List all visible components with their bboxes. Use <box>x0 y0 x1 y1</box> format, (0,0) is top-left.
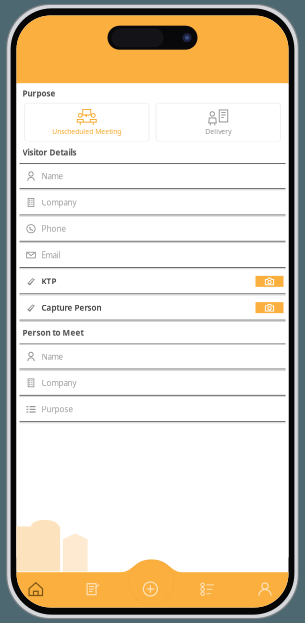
button[interactable]: Add <box>122 576 179 602</box>
staticText: Person to Meet <box>22 327 83 338</box>
button[interactable]: Phone <box>19 217 285 243</box>
staticText: Company <box>41 377 76 388</box>
button[interactable]: Purpose <box>19 397 285 423</box>
staticText: Name <box>41 171 63 181</box>
button[interactable]: List <box>179 576 236 602</box>
button[interactable]: Delivery <box>156 103 280 141</box>
button[interactable]: Profile <box>236 576 294 602</box>
staticText: Name <box>41 351 63 362</box>
staticText: Capture Person <box>41 302 101 313</box>
button[interactable]: Name <box>19 164 285 190</box>
staticText: Purpose <box>22 88 55 99</box>
staticText: Phone <box>41 223 66 234</box>
button[interactable]: KTP <box>19 269 285 296</box>
staticText: Delivery <box>205 127 231 136</box>
button[interactable]: Email <box>19 243 285 269</box>
staticText: Unscheduled Meeting <box>52 127 121 136</box>
staticText: Email <box>41 250 60 260</box>
staticText: Visitor Details <box>22 147 76 158</box>
button[interactable]: Name <box>19 344 285 371</box>
button[interactable]: Home <box>7 576 64 602</box>
staticText: Company <box>41 197 76 208</box>
staticText: Purpose <box>41 404 73 414</box>
button[interactable]: Company <box>19 371 285 397</box>
button[interactable]: Capture Person <box>19 296 285 322</box>
button[interactable]: Scan <box>64 576 122 602</box>
button[interactable]: Unscheduled Meeting <box>24 103 149 141</box>
button[interactable]: Company <box>19 190 285 217</box>
staticText: KTP <box>41 276 56 287</box>
